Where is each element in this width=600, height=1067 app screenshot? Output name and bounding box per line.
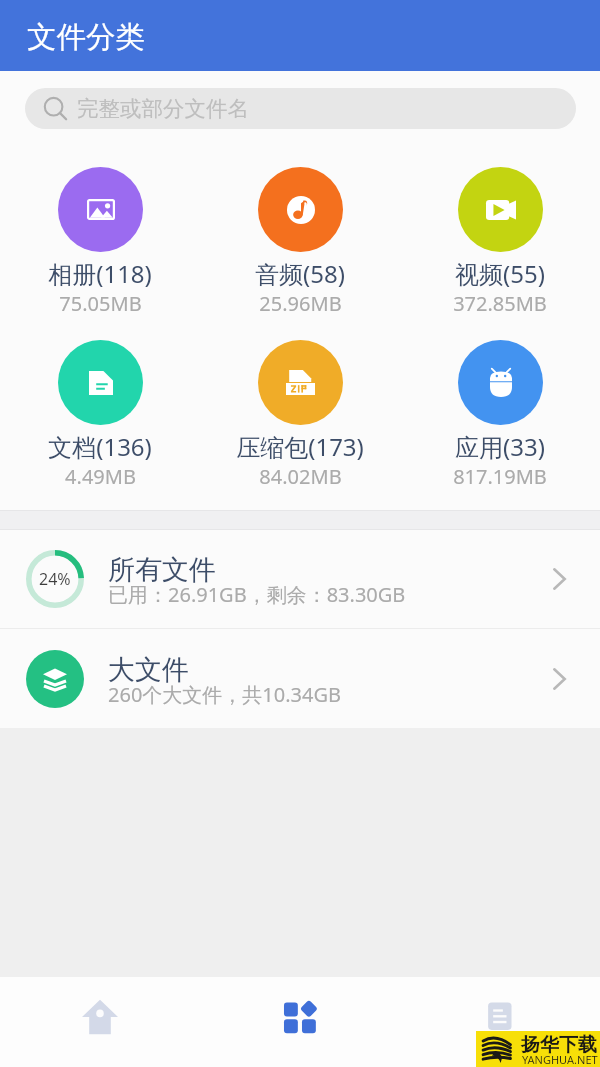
button[interactable]: Files xyxy=(400,977,600,1067)
staticText: 260个大文件，共10.34GB xyxy=(108,681,341,708)
button[interactable]: 视频(55) xyxy=(400,167,600,317)
button[interactable]: 音频(58) xyxy=(200,167,400,317)
staticText: 84.02MB xyxy=(259,463,342,490)
button[interactable]: 文件分类 xyxy=(0,0,600,71)
staticText: 25.96MB xyxy=(259,290,342,317)
staticText: 817.19MB xyxy=(453,463,547,490)
button[interactable]: 完整或部分文件名 xyxy=(25,88,576,129)
staticText: 所有文件 xyxy=(108,553,216,587)
staticText: 已用：26.91GB，剩余：83.30GB xyxy=(108,581,406,608)
staticText: 24% xyxy=(39,568,71,590)
button[interactable]: Home xyxy=(0,977,200,1067)
button[interactable]: 24% xyxy=(0,530,600,628)
staticText: 文档(136) xyxy=(48,430,152,463)
staticText: 视频(55) xyxy=(455,257,545,290)
button[interactable]: 压缩包(173) xyxy=(200,340,400,490)
staticText: 文件分类 xyxy=(27,19,145,56)
staticText: 相册(118) xyxy=(48,257,152,290)
staticText: 应用(33) xyxy=(455,430,545,463)
staticText: 75.05MB xyxy=(59,290,142,317)
staticText: 大文件 xyxy=(108,653,189,687)
button[interactable]: 应用(33) xyxy=(400,340,600,490)
staticText: 完整或部分文件名 xyxy=(77,95,249,122)
button[interactable]: 大文件 xyxy=(0,629,600,728)
staticText: 扬华下载 xyxy=(521,1033,597,1057)
staticText: 音频(58) xyxy=(255,257,345,290)
button[interactable]: 文档(136) xyxy=(0,340,200,490)
staticText: YANGHUA.NET xyxy=(522,1052,598,1067)
staticText: 372.85MB xyxy=(453,290,547,317)
button[interactable]: 相册(118) xyxy=(0,167,200,317)
staticText: 压缩包(173) xyxy=(236,430,364,463)
staticText: 4.49MB xyxy=(65,463,136,490)
button[interactable]: Categories xyxy=(200,977,400,1067)
